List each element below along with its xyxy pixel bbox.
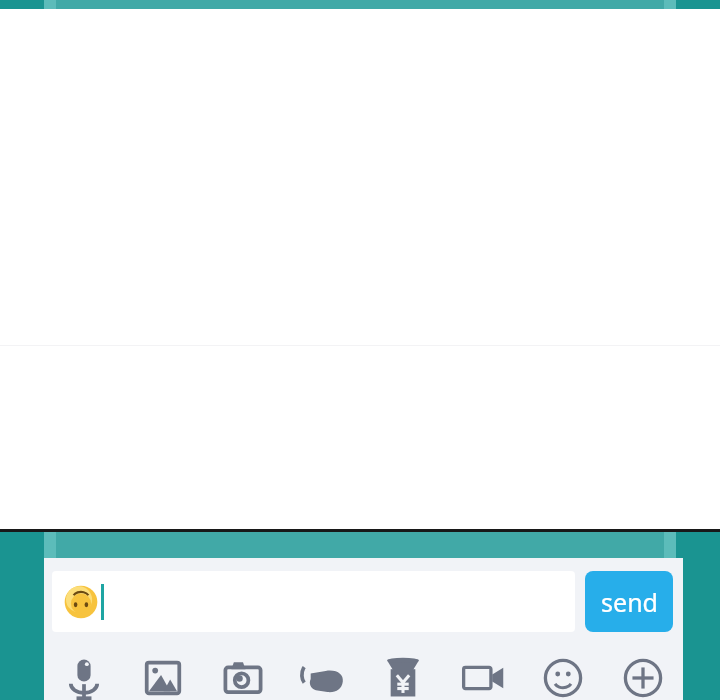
button[interactable] bbox=[52, 571, 575, 632]
button[interactable]: Red packet bbox=[363, 642, 443, 700]
button[interactable]: Voice message bbox=[44, 642, 123, 700]
button[interactable]: Camera bbox=[203, 642, 283, 700]
button[interactable]: GIF bbox=[443, 642, 523, 700]
button[interactable]: Emoji bbox=[523, 642, 603, 700]
button[interactable]: Photos bbox=[123, 642, 203, 700]
button[interactable]: send bbox=[585, 571, 673, 632]
button[interactable]: Shake bbox=[283, 642, 363, 700]
staticText: send bbox=[601, 585, 658, 619]
button[interactable]: More bbox=[603, 642, 683, 700]
